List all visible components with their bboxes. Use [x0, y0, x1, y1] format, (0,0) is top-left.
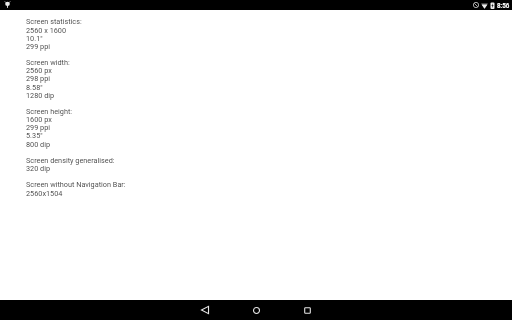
staticText: 8.58"	[26, 83, 43, 92]
staticText: 299 ppi	[26, 123, 51, 132]
staticText: 299 ppi	[26, 42, 51, 51]
staticText: 1600 px	[26, 115, 52, 124]
staticText: Screen without Navigation Bar:	[26, 180, 126, 189]
button[interactable]: Back	[184, 300, 225, 320]
staticText: 320 dip	[26, 164, 51, 173]
button[interactable]: Recents	[287, 300, 328, 320]
staticText: 2560 x 1600	[26, 26, 67, 35]
button[interactable]: Home	[236, 300, 277, 320]
staticText: Screen statistics:	[26, 17, 82, 26]
staticText: 5.35"	[26, 131, 43, 140]
staticText: 2560 px	[26, 66, 52, 75]
staticText: 298 ppi	[26, 74, 51, 83]
staticText: Screen density generalised:	[26, 156, 115, 165]
staticText: 800 dip	[26, 140, 51, 149]
staticText: 10.1"	[26, 34, 43, 43]
staticText: Screen width:	[26, 58, 70, 67]
staticText: 2560x1504	[26, 189, 63, 198]
staticText: 8:56	[497, 2, 510, 9]
staticText: 1280 dip	[26, 91, 55, 100]
staticText: Screen height:	[26, 107, 73, 116]
